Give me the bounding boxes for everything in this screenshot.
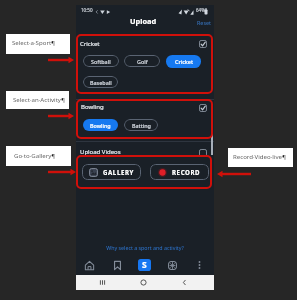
staticText: Softball [91, 58, 111, 65]
staticText: Cricket [80, 40, 100, 48]
button[interactable]: Home [139, 278, 148, 287]
button[interactable]: Home [83, 259, 96, 272]
staticText: Select·an·Activity¶ [13, 95, 65, 103]
staticText: Bowling [81, 103, 104, 111]
staticText: Upload Videos [80, 148, 121, 156]
button[interactable]: Activity selected [199, 104, 207, 112]
staticText: 64% [196, 7, 205, 13]
staticText: Record·Video·live¶ [233, 152, 287, 160]
staticText: Why select a sport and activity? [76, 244, 214, 251]
staticText: S [142, 259, 147, 271]
staticText: Select·a·Sport¶ [12, 38, 56, 46]
button[interactable]: RECORD [150, 164, 209, 180]
button[interactable]: Upload videos [199, 149, 207, 157]
staticText: Baseball [90, 79, 112, 86]
staticText: Golf [137, 58, 148, 65]
button[interactable]: More options [196, 259, 203, 271]
staticText: Batting [132, 122, 151, 129]
staticText: GALLERY [103, 168, 135, 176]
button[interactable]: Sport selected [199, 40, 207, 48]
button[interactable]: Cricket [166, 55, 201, 68]
button[interactable]: Discover [166, 259, 179, 272]
button[interactable]: Batting [124, 119, 158, 131]
button[interactable]: Sports [138, 259, 151, 271]
staticText: Bowling [90, 122, 111, 129]
button[interactable]: Softball [83, 55, 119, 67]
staticText: Upload [130, 16, 157, 26]
staticText: RECORD [172, 168, 201, 176]
button[interactable]: Back [180, 278, 189, 287]
staticText: Go·to·Gallery¶ [14, 151, 56, 159]
button[interactable]: Recents [98, 278, 107, 287]
button[interactable]: Saved [112, 259, 123, 272]
button[interactable]: GALLERY [82, 164, 141, 180]
button[interactable]: Reset [195, 18, 212, 27]
button[interactable]: Bowling [83, 119, 118, 131]
staticText: Cricket [175, 58, 193, 65]
staticText: Reset [197, 19, 211, 26]
button[interactable]: Golf [124, 55, 160, 67]
button[interactable]: Baseball [83, 76, 118, 88]
staticText: 10:50 [81, 7, 93, 13]
